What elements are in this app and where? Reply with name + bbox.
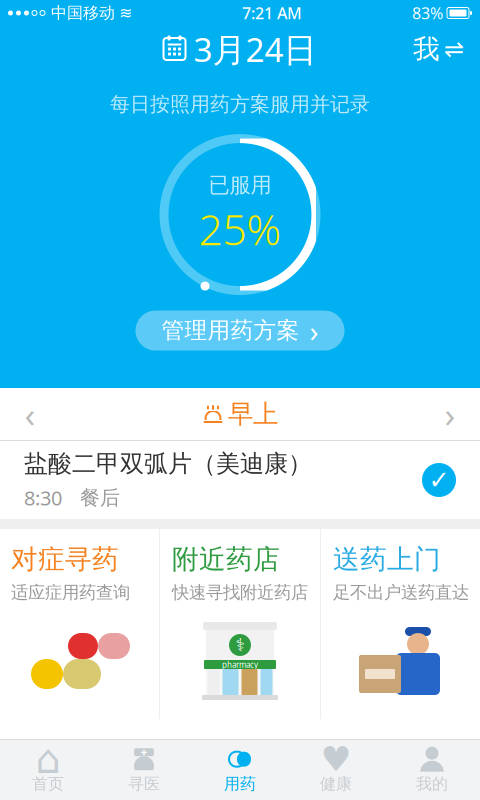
staticText: 足不出户送药直达 xyxy=(333,582,469,603)
staticText: 盐酸二甲双弧片（美迪康） xyxy=(24,449,312,478)
staticText: ⌂ xyxy=(35,736,60,782)
staticText: 每日按照用药方案服用并记录 xyxy=(110,92,370,117)
staticText: ‹ xyxy=(24,391,35,437)
button[interactable]: 送药上门 xyxy=(321,529,480,719)
staticText: 管理用药方案 xyxy=(161,317,299,344)
staticText: 对症寻药 xyxy=(11,543,119,576)
button[interactable]: 盐酸二甲双弧片（美迪康） xyxy=(0,441,480,519)
staticText: 早上 xyxy=(228,398,278,429)
staticText: + xyxy=(140,744,147,760)
button[interactable]: 我 xyxy=(397,25,480,73)
staticText: 餐后 xyxy=(80,485,120,510)
staticText: › xyxy=(309,311,318,350)
button[interactable]: 上一时段 xyxy=(0,388,60,440)
staticText: ♥ xyxy=(320,739,351,779)
staticText: › xyxy=(444,391,455,437)
staticText: ⚕ xyxy=(235,635,244,655)
button[interactable]: 对症寻药 xyxy=(0,529,159,719)
staticText: 我的 xyxy=(416,774,448,794)
staticText: 首页 xyxy=(32,774,64,794)
staticText: 健康 xyxy=(320,774,352,794)
staticText: 83% xyxy=(412,2,443,24)
staticText: 我 xyxy=(413,33,440,65)
staticText: 用药 xyxy=(224,774,256,794)
staticText: ✓ xyxy=(428,466,449,494)
staticText: 25% xyxy=(198,200,281,257)
staticText: 中国移动 xyxy=(51,3,115,23)
staticText: 附近药店 xyxy=(172,543,280,576)
staticText: 已服用 xyxy=(208,172,271,198)
button[interactable]: 管理用药方案 xyxy=(135,311,344,351)
button[interactable]: + xyxy=(96,743,192,797)
button[interactable]: 我的 xyxy=(384,743,480,797)
button[interactable]: ♥ xyxy=(288,743,384,797)
button[interactable]: 附近药店 xyxy=(160,529,320,719)
staticText: 7:21 AM xyxy=(242,2,302,24)
staticText: 送药上门 xyxy=(333,543,441,576)
staticText: ≋ xyxy=(119,4,132,22)
staticText: 快速寻找附近药店 xyxy=(172,582,308,603)
staticText: 寻医 xyxy=(128,774,160,794)
button[interactable]: 下一时段 xyxy=(420,388,480,440)
staticText: pharmacy xyxy=(222,659,258,670)
button[interactable]: ⌂ xyxy=(0,743,96,797)
staticText: 3月24日 xyxy=(193,27,316,71)
staticText: 8:30 xyxy=(24,484,62,511)
staticText: 适应症用药查询 xyxy=(11,582,130,603)
staticText: ⇌ xyxy=(444,35,464,63)
button[interactable]: 用药 xyxy=(192,743,288,797)
